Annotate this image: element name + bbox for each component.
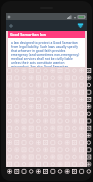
button[interactable]: Good Samaritan law [8, 31, 85, 67]
button[interactable]: Navigate up [7, 22, 15, 30]
button[interactable]: Favorites [76, 21, 85, 30]
staticText: a law designed to protect a Good Samarit… [11, 41, 82, 67]
staticText: Good Samaritan law [10, 32, 47, 37]
